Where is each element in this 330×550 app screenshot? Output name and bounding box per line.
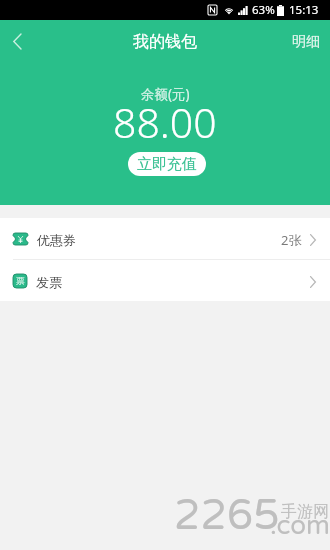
- staticText: 手游网: [281, 502, 329, 522]
- staticText: 优惠券: [37, 232, 76, 248]
- staticText: 2265: [174, 490, 280, 541]
- staticText: .com: [270, 510, 330, 541]
- button[interactable]: 票: [0, 260, 330, 301]
- staticText: 63%: [252, 2, 275, 18]
- staticText: 立即充值: [137, 155, 197, 174]
- staticText: 发票: [36, 274, 62, 290]
- staticText: 我的钱包: [133, 32, 197, 52]
- button[interactable]: 优惠券: [0, 218, 330, 259]
- button[interactable]: 明细: [282, 24, 330, 58]
- staticText: 票: [16, 276, 25, 287]
- staticText: 88.00: [113, 94, 217, 150]
- button[interactable]: 立即充值: [128, 152, 206, 176]
- staticText: 余额(元): [141, 85, 190, 103]
- staticText: 2张: [281, 231, 302, 249]
- staticText: 15:13: [289, 2, 319, 18]
- staticText: 明细: [292, 33, 320, 51]
- button[interactable]: Back: [0, 22, 38, 60]
